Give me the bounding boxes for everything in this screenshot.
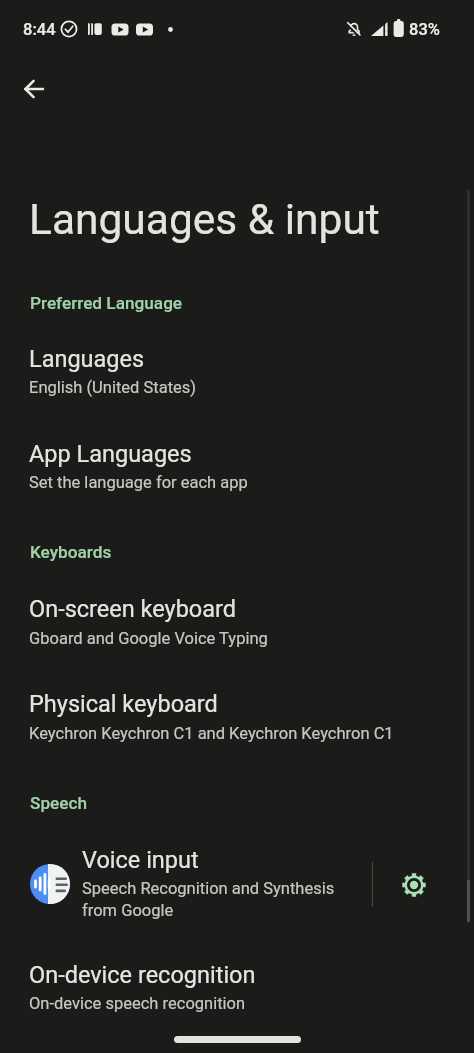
staticText: Keyboards bbox=[30, 542, 112, 562]
button[interactable]: Voice input bbox=[0, 838, 372, 928]
button[interactable]: On-device recognition bbox=[0, 952, 474, 1024]
staticText: On-device recognition bbox=[29, 961, 256, 989]
staticText: Languages & input bbox=[29, 195, 380, 245]
staticText: Preferred Language bbox=[30, 293, 183, 313]
staticText: from Google bbox=[82, 901, 174, 920]
staticText: On-screen keyboard bbox=[29, 595, 237, 623]
staticText: Set the language for each app bbox=[29, 473, 248, 492]
button[interactable] bbox=[12, 67, 56, 111]
button[interactable] bbox=[390, 860, 438, 908]
button[interactable]: Physical keyboard bbox=[0, 681, 474, 753]
staticText: Languages bbox=[29, 345, 145, 373]
button[interactable]: Languages bbox=[0, 336, 474, 408]
button[interactable]: App Languages bbox=[0, 431, 474, 503]
staticText: 8:44 bbox=[23, 20, 56, 39]
staticText: 83% bbox=[409, 20, 440, 39]
staticText: English (United States) bbox=[29, 378, 197, 397]
staticText: Voice input bbox=[82, 846, 199, 874]
staticText: Keychron Keychron C1 and Keychron Keychr… bbox=[29, 724, 394, 743]
staticText: Gboard and Google Voice Typing bbox=[29, 629, 268, 648]
staticText: Speech Recognition and Synthesis bbox=[82, 879, 335, 898]
staticText: Physical keyboard bbox=[29, 690, 218, 718]
button[interactable]: On-screen keyboard bbox=[0, 586, 474, 658]
staticText: Speech bbox=[30, 793, 88, 813]
staticText: App Languages bbox=[29, 440, 192, 468]
staticText: On-device speech recognition bbox=[29, 994, 246, 1013]
